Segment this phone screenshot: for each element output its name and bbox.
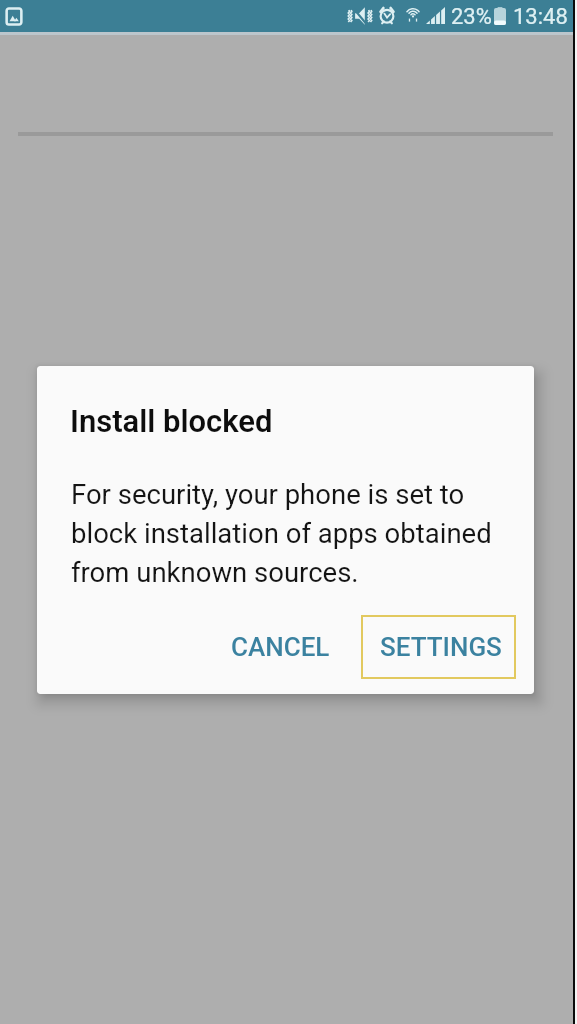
staticText: CANCEL xyxy=(231,632,330,662)
staticText: Install blocked xyxy=(70,403,273,439)
staticText: For security, your phone is set to block… xyxy=(71,478,492,588)
button[interactable]: CANCEL xyxy=(212,615,343,679)
other: Screenshot captured xyxy=(6,8,22,25)
staticText: 13:48 xyxy=(513,4,568,30)
staticText: SETTINGS xyxy=(380,632,502,662)
staticText: 23% xyxy=(451,4,492,30)
button[interactable]: SETTINGS xyxy=(361,615,516,679)
